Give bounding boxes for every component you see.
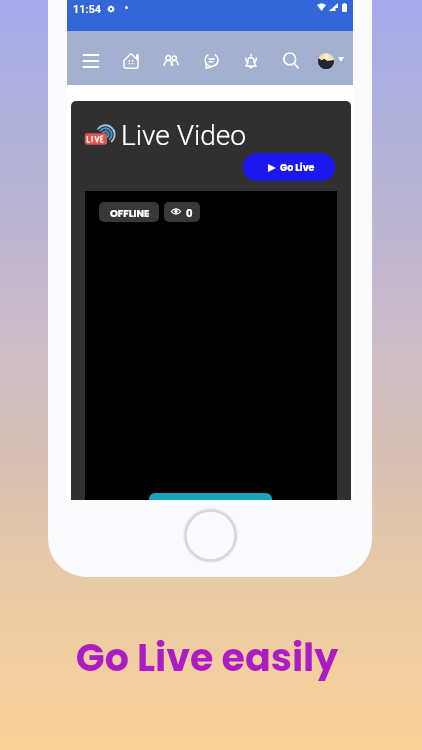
staticText: Go Live easily: [0, 631, 418, 684]
button[interactable]: Start broadcast: [149, 493, 272, 500]
button[interactable]: Friends: [157, 47, 185, 75]
button[interactable]: Notifications: [237, 47, 265, 75]
staticText: Go Live: [280, 161, 315, 174]
button[interactable]: Go Live: [243, 153, 335, 181]
staticText: 0: [186, 206, 193, 220]
button[interactable]: Home: [117, 47, 145, 75]
staticText: 11:54: [73, 3, 101, 16]
staticText: Live Video: [121, 119, 246, 152]
staticText: OFFLINE: [110, 206, 150, 220]
button[interactable]: Menu: [77, 47, 105, 75]
button[interactable]: 0 viewers: [164, 202, 200, 222]
button[interactable]: Messages: [197, 47, 225, 75]
button[interactable]: Search: [277, 47, 305, 75]
button[interactable]: Home button: [182, 507, 239, 564]
button[interactable]: More options: [338, 57, 344, 62]
button[interactable]: Profile: [318, 53, 334, 69]
button[interactable]: OFFLINE: [99, 202, 159, 222]
